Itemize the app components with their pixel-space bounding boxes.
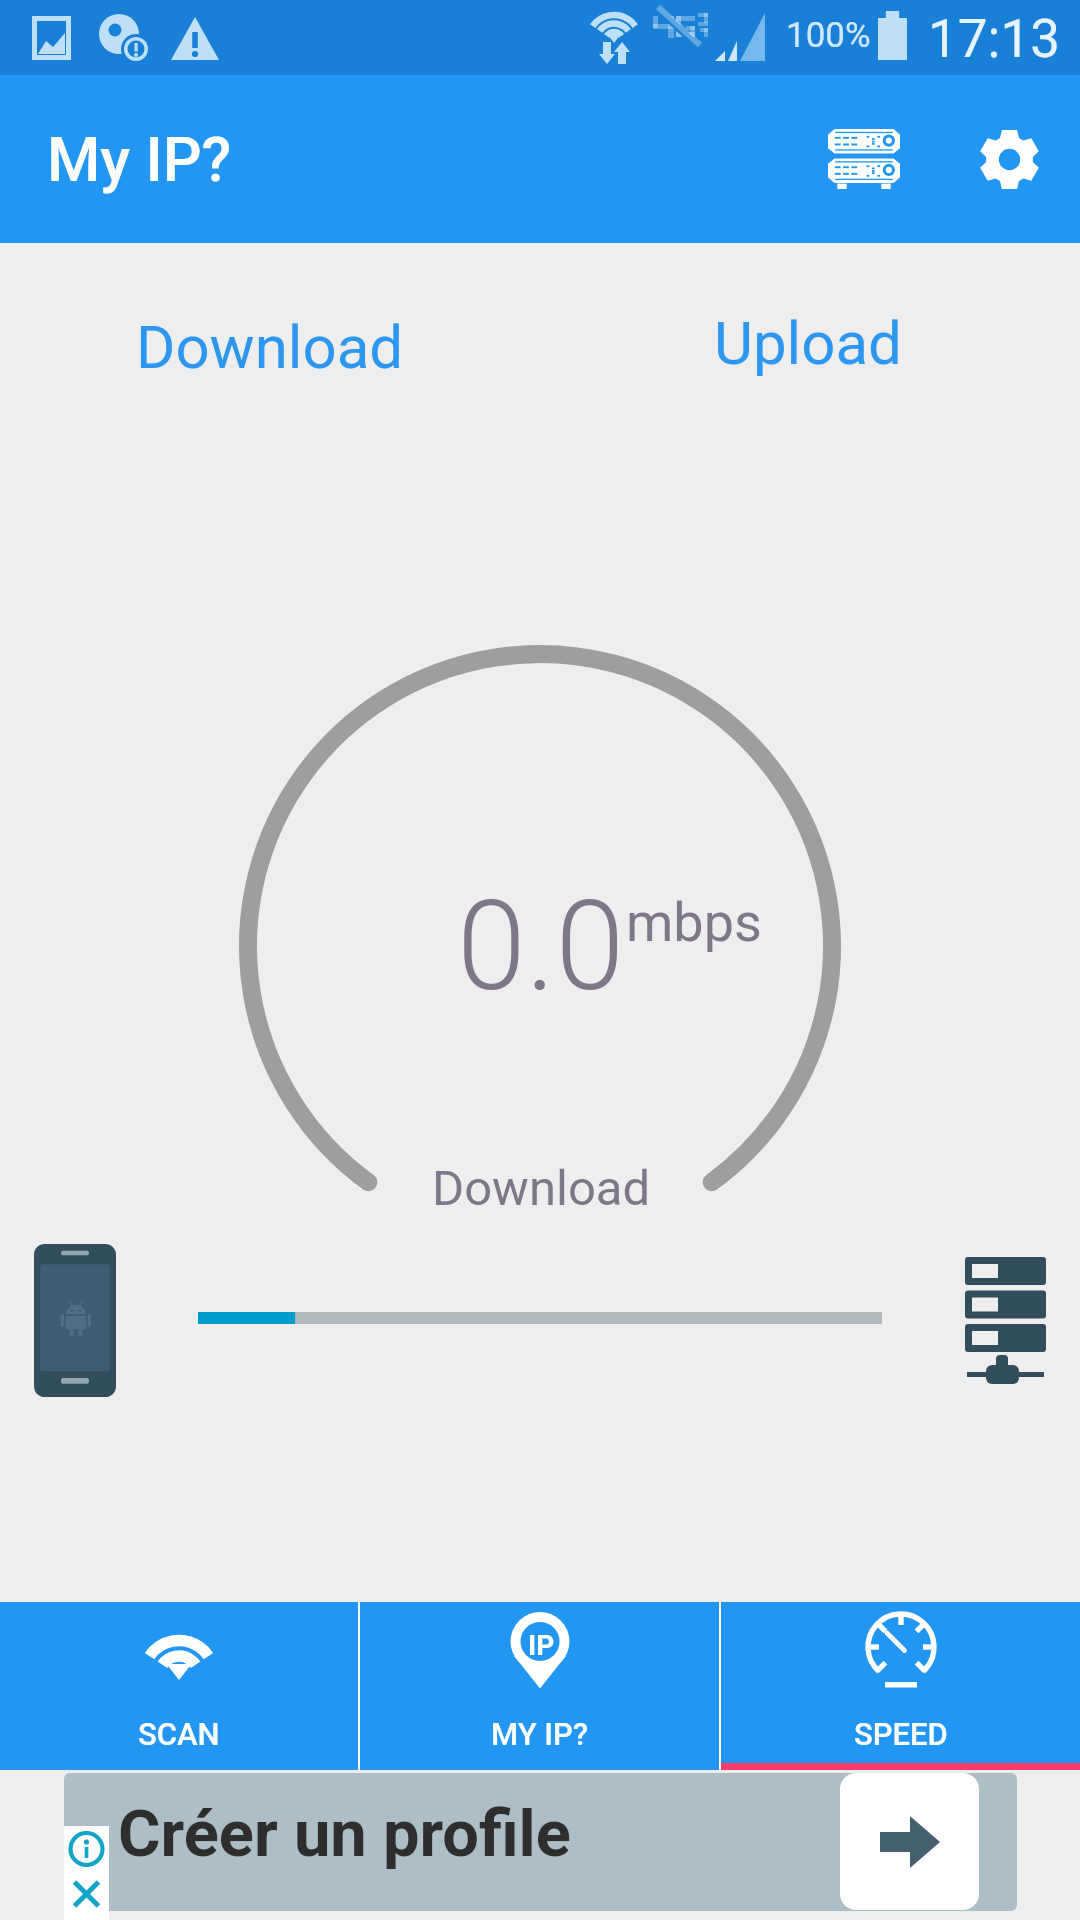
button[interactable]: Upload [714, 308, 902, 378]
button[interactable]: Download [136, 312, 404, 382]
button[interactable]: Créer un profile [64, 1773, 1017, 1911]
staticText: SCAN [138, 1716, 220, 1752]
staticText: Créer un profile [118, 1796, 571, 1872]
staticText: MY IP? [491, 1716, 588, 1752]
staticText: Download [432, 1160, 651, 1217]
staticText: My IP? [47, 124, 232, 195]
button[interactable]: Servers [792, 75, 936, 243]
staticText: 100% [786, 15, 871, 56]
staticText: mbps [626, 891, 762, 954]
staticText: 0.0 [457, 874, 625, 1019]
button[interactable]: IP [360, 1602, 719, 1770]
staticText: IP [528, 1629, 555, 1662]
button[interactable]: Settings [938, 75, 1080, 243]
button[interactable]: SCAN [0, 1602, 358, 1770]
staticText: 17:13 [928, 8, 1060, 70]
staticText: SPEED [854, 1716, 948, 1752]
button[interactable]: SPEED [721, 1602, 1080, 1770]
other: Open advertisement [840, 1773, 979, 1910]
